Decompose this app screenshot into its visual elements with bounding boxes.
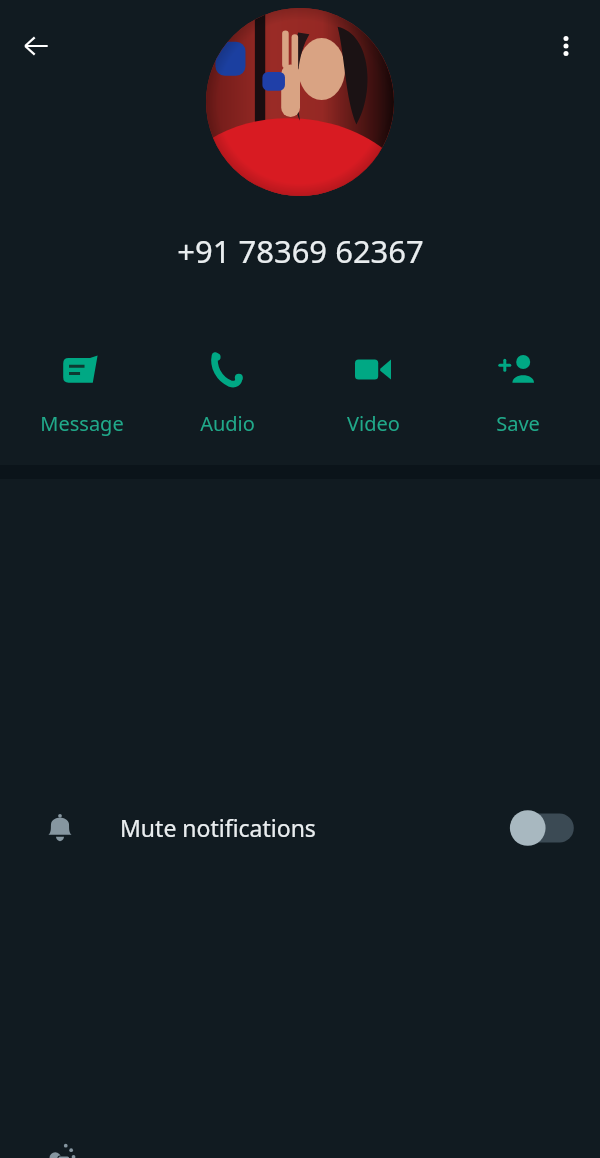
button[interactable] (206, 8, 394, 196)
staticText: Message (40, 410, 124, 437)
button[interactable]: Mute notifications (0, 497, 600, 1158)
staticText: Mute notifications (120, 812, 316, 843)
button[interactable]: Save (454, 338, 582, 437)
staticText: Save (496, 410, 540, 437)
button[interactable]: Audio (163, 338, 291, 437)
staticText: +91 78369 62367 (177, 230, 424, 272)
staticText: Audio (200, 410, 255, 437)
button[interactable]: Video (309, 338, 437, 437)
button[interactable]: Message (18, 338, 146, 437)
button[interactable] (509, 809, 581, 847)
button[interactable]: More options (542, 22, 590, 70)
button[interactable]: Back (12, 22, 60, 70)
staticText: Video (347, 410, 400, 437)
